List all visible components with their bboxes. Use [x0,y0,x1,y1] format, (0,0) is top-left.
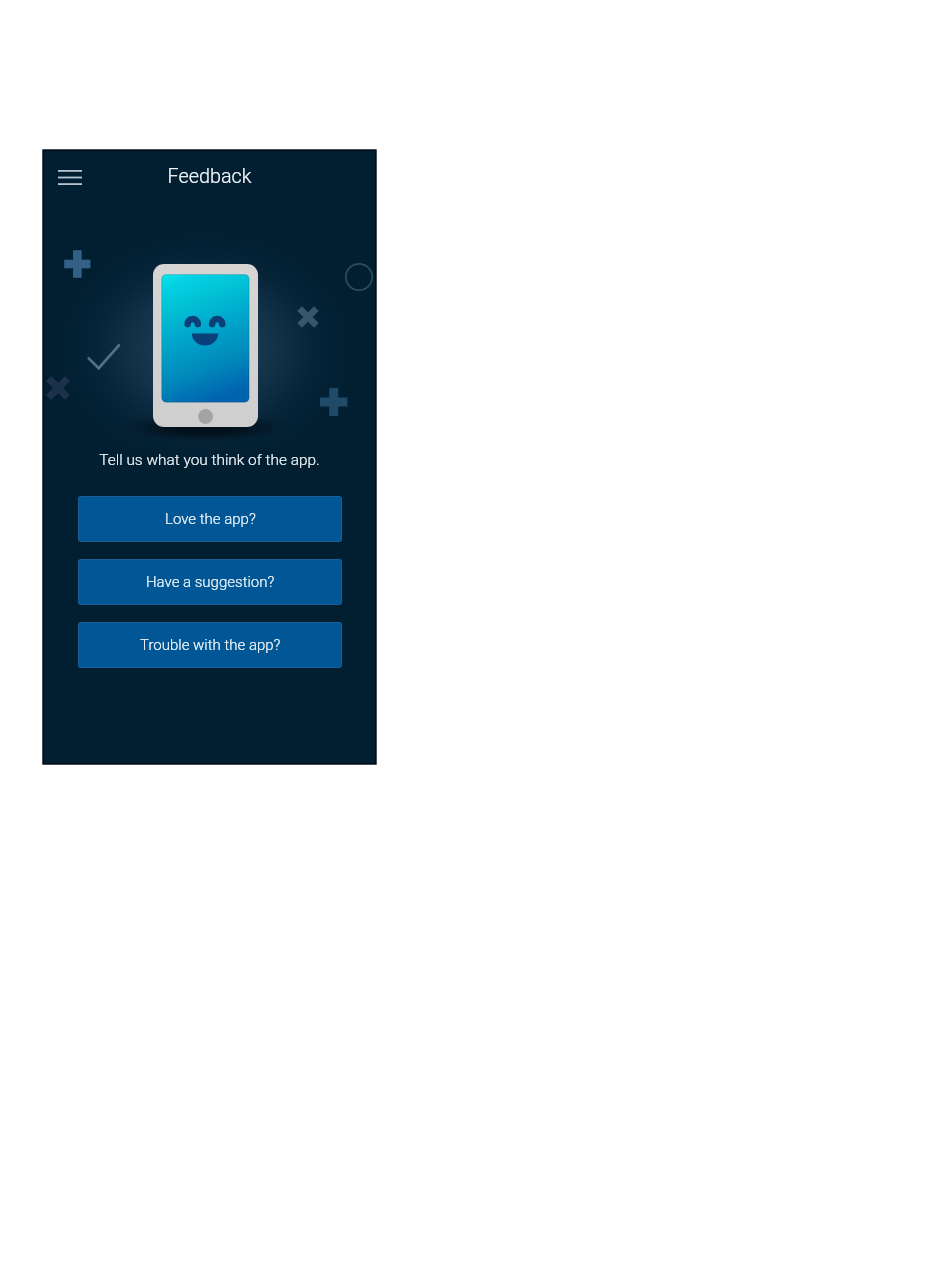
staticText: Love the app? [165,510,256,528]
button[interactable]: Have a suggestion? [78,559,342,605]
button[interactable]: Open navigation menu [47,158,93,196]
staticText: Have a suggestion? [146,573,275,591]
staticText: Tell us what you think of the app. [43,451,376,469]
button[interactable]: Love the app? [78,496,342,542]
staticText: Trouble with the app? [140,636,281,654]
button[interactable]: Trouble with the app? [78,622,342,668]
staticText: Feedback [43,165,376,188]
